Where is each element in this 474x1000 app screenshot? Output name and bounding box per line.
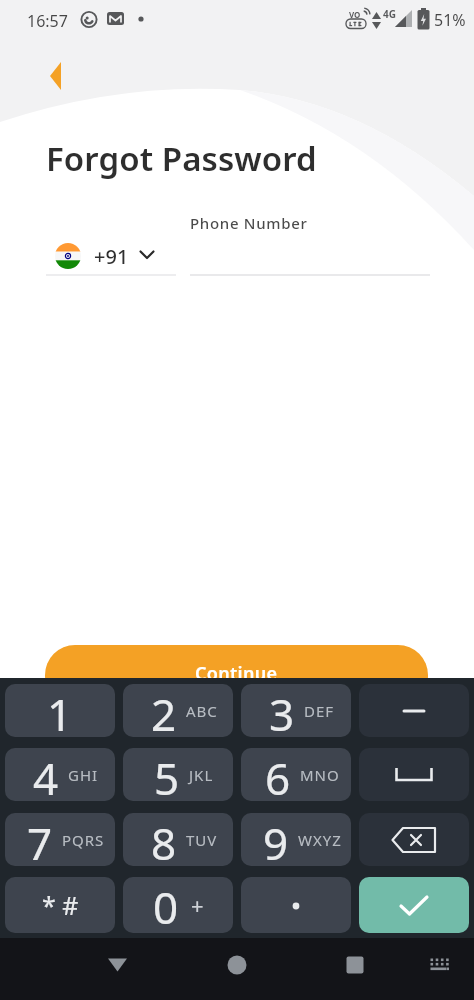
button[interactable]: 4: [5, 748, 115, 801]
button[interactable]: [217, 945, 257, 985]
staticText: * #: [42, 888, 79, 922]
staticText: 4G: [383, 7, 396, 21]
staticText: VO: [349, 9, 361, 20]
button[interactable]: [98, 945, 138, 985]
staticText: 8: [151, 813, 177, 866]
staticText: DEF: [304, 701, 335, 721]
staticText: Phone Number: [190, 213, 308, 233]
staticText: JKL: [189, 765, 214, 785]
staticText: Continue: [195, 661, 278, 686]
staticText: 2: [151, 684, 177, 737]
button[interactable]: [241, 877, 351, 933]
button[interactable]: 6: [241, 748, 351, 801]
button[interactable]: 7: [5, 813, 115, 866]
button[interactable]: 8: [123, 813, 233, 866]
staticText: 16:57: [27, 10, 68, 32]
button[interactable]: 1: [5, 684, 115, 737]
staticText: 3: [269, 684, 295, 737]
button[interactable]: +91: [44, 238, 164, 274]
staticText: GHI: [68, 765, 99, 785]
staticText: +: [191, 890, 204, 920]
staticText: MNO: [300, 765, 340, 785]
staticText: 51%: [434, 9, 466, 31]
staticText: 9: [263, 813, 289, 866]
button[interactable]: 0: [123, 877, 233, 933]
staticText: 1: [47, 684, 73, 737]
button[interactable]: [40, 54, 72, 96]
staticText: TUV: [186, 830, 218, 850]
staticText: Forgot Password: [46, 136, 317, 181]
staticText: PQRS: [62, 830, 105, 850]
staticText: 6: [265, 748, 291, 801]
staticText: +91: [94, 243, 129, 270]
staticText: 0: [153, 877, 179, 933]
staticText: 7: [27, 813, 53, 866]
button[interactable]: 9: [241, 813, 351, 866]
button[interactable]: 2: [123, 684, 233, 737]
button[interactable]: [335, 945, 375, 985]
button[interactable]: [359, 684, 469, 737]
staticText: 5: [154, 748, 180, 801]
button[interactable]: [359, 813, 469, 866]
button[interactable]: [420, 945, 460, 985]
staticText: WXYZ: [298, 830, 342, 850]
button[interactable]: [359, 748, 469, 801]
button[interactable]: Continue: [45, 645, 428, 707]
button[interactable]: * #: [5, 877, 115, 933]
button[interactable]: [359, 877, 469, 933]
staticText: 4: [33, 748, 59, 801]
button[interactable]: 3: [241, 684, 351, 737]
staticText: ABC: [186, 701, 218, 721]
button[interactable]: 5: [123, 748, 233, 801]
